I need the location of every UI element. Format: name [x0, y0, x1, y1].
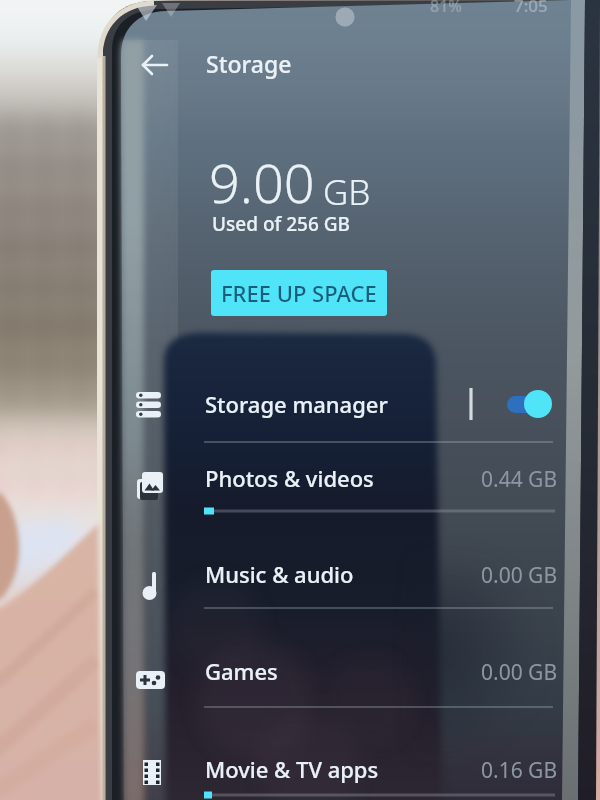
staticText: Used of 256 GB — [212, 211, 350, 237]
staticText: 81% — [430, 0, 462, 17]
staticText: 0.44 GB — [481, 465, 558, 494]
staticText: 0.00 GB — [481, 561, 558, 590]
button[interactable]: Music & audio — [0, 557, 600, 601]
staticText: Games — [205, 656, 278, 686]
button[interactable]: FREE UP SPACE — [211, 270, 387, 316]
button[interactable]: Storage manager — [0, 376, 600, 434]
staticText: FREE UP SPACE — [221, 278, 377, 308]
staticText: Photos & videos — [205, 463, 374, 493]
staticText: Storage manager — [205, 389, 388, 419]
staticText: 0.16 GB — [481, 756, 558, 785]
button[interactable]: Movie & TV apps — [0, 752, 600, 796]
staticText: Music & audio — [205, 559, 354, 589]
staticText: 9.00 — [209, 145, 315, 219]
staticText: Movie & TV apps — [205, 754, 379, 784]
button[interactable]: Photos & videos — [0, 461, 600, 505]
button[interactable]: Games — [0, 654, 600, 698]
staticText: 7:05 — [514, 0, 548, 17]
button[interactable]: Back — [133, 43, 177, 87]
staticText: GB — [323, 168, 371, 216]
staticText: Storage — [206, 48, 292, 79]
staticText: 0.00 GB — [481, 658, 558, 687]
